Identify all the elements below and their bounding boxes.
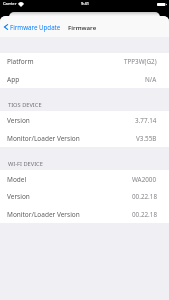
staticText: Monitor/Loader Version (7, 210, 80, 219)
staticText: WA2000 (132, 175, 157, 184)
staticText: WI-FI DEVICE (8, 160, 43, 168)
staticText: Platform (7, 57, 34, 66)
button[interactable]: Version (0, 188, 169, 205)
other: Battery (157, 3, 167, 6)
staticText: Firmware Update (10, 23, 61, 31)
staticText: TIOS DEVICE (8, 101, 42, 109)
staticText: Version (7, 192, 30, 201)
staticText: 3.77.14 (135, 116, 157, 125)
staticText: 00.22.18 (132, 210, 157, 219)
staticText: N/A (145, 75, 157, 84)
staticText: App (7, 75, 20, 84)
other: Wi-Fi signal (18, 3, 24, 7)
button[interactable]: Monitor/Loader Version (0, 205, 169, 223)
staticText: 9:41 (81, 1, 89, 6)
staticText: TPP3W(G2) (124, 57, 157, 66)
button[interactable]: Monitor/Loader Version (0, 129, 169, 147)
staticText: Version (7, 116, 30, 125)
button[interactable]: Version (0, 111, 169, 129)
button[interactable]: Platform (0, 53, 169, 70)
button[interactable]: App (0, 70, 169, 88)
staticText: Firmware (68, 23, 97, 31)
staticText: Monitor/Loader Version (7, 134, 80, 143)
staticText: V3.55B (136, 134, 157, 143)
button[interactable]: Firmware Update (0, 20, 66, 34)
staticText: Model (7, 175, 27, 184)
staticText: Carrier (3, 1, 17, 7)
button[interactable]: Model (0, 170, 169, 188)
staticText: 00.22.18 (132, 192, 157, 201)
